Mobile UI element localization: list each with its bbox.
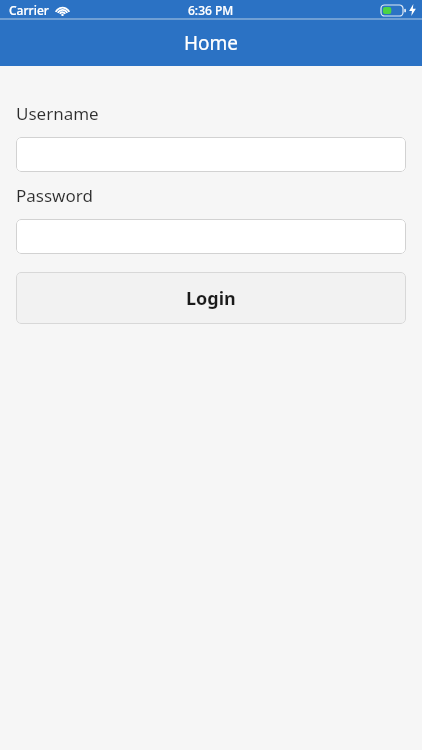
staticText: Carrier [9,2,49,18]
button[interactable]: Password field [16,219,406,254]
staticText: Password [16,184,93,207]
staticText: Username [16,102,99,125]
button[interactable]: Username field [16,137,406,172]
staticText: 6:36 PM [188,2,234,18]
staticText: Home [184,30,239,56]
button[interactable]: Login [16,272,406,324]
staticText: Login [186,286,236,311]
